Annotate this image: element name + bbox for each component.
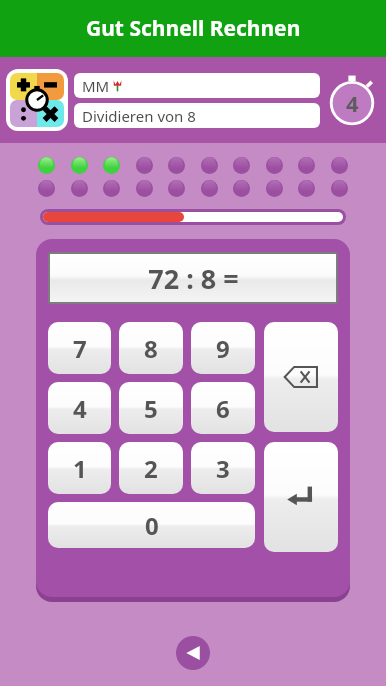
button[interactable]: 8	[119, 322, 183, 374]
button[interactable]: Backspace	[264, 322, 338, 432]
staticText: 72 : 8 =	[148, 260, 239, 297]
staticText: MM	[82, 76, 110, 96]
button[interactable]: 5	[119, 382, 183, 434]
staticText: 8	[144, 332, 158, 365]
staticText: Gut Schnell Rechnen	[86, 14, 301, 43]
button[interactable]: 1	[48, 442, 111, 494]
staticText: 0	[145, 509, 159, 542]
button[interactable]: 2	[119, 442, 183, 494]
button[interactable]: Dividieren von 8	[74, 103, 320, 128]
button[interactable]: 0	[48, 502, 255, 548]
button[interactable]: Enter	[264, 442, 338, 552]
button[interactable]: MM	[74, 73, 320, 98]
button[interactable]: 6	[191, 382, 255, 434]
staticText: 4	[73, 392, 87, 425]
staticText: 6	[216, 392, 230, 425]
staticText: 1	[73, 452, 87, 485]
button[interactable]: 9	[191, 322, 255, 374]
button[interactable]: 3	[191, 442, 255, 494]
staticText: 2	[144, 452, 158, 485]
staticText: 9	[216, 332, 230, 365]
button[interactable]: Back	[176, 636, 210, 670]
button[interactable]: App icon	[6, 69, 68, 131]
staticText: 3	[216, 452, 230, 485]
button[interactable]: Timer	[326, 74, 378, 126]
staticText: 5	[144, 392, 158, 425]
button[interactable]: 7	[48, 322, 111, 374]
staticText: 4	[346, 88, 359, 118]
staticText: Dividieren von 8	[82, 106, 196, 126]
button[interactable]: 4	[48, 382, 111, 434]
staticText: 7	[73, 332, 87, 365]
